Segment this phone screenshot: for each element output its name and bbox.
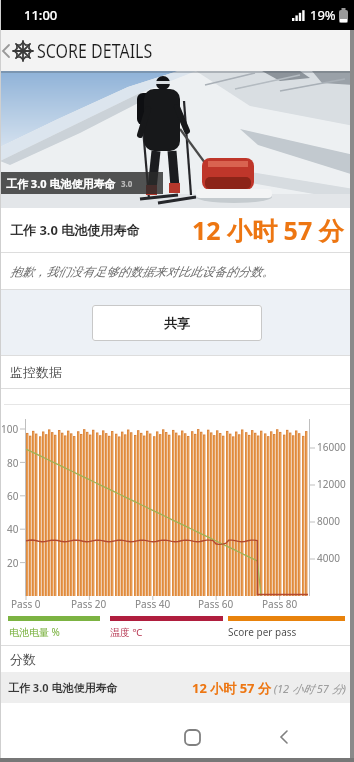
button[interactable]: 共享 xyxy=(92,305,262,341)
staticText: 分数 xyxy=(10,651,36,667)
staticText: 电池电量 % xyxy=(9,625,60,639)
staticText: 抱歉，我们没有足够的数据来对比此设备的分数。 xyxy=(10,264,274,279)
staticText: 100 xyxy=(1,422,19,436)
staticText: 11:00 xyxy=(24,6,58,24)
staticText: 60 xyxy=(7,489,19,503)
staticText: Pass 80 xyxy=(262,597,298,611)
button[interactable]: 工作 3.0 电池使用寿命 xyxy=(8,672,346,703)
staticText: 12 小时 57 分 xyxy=(192,213,344,247)
staticText: SCORE DETAILS xyxy=(37,38,153,64)
staticText: 工作 3.0 电池使用寿命 xyxy=(10,221,140,239)
button[interactable]: SCORE DETAILS xyxy=(0,30,354,71)
staticText: Pass 40 xyxy=(135,597,171,611)
staticText: 12000 xyxy=(317,477,346,491)
staticText: Pass 20 xyxy=(71,597,107,611)
staticText: 20 xyxy=(7,556,19,570)
staticText: 40 xyxy=(7,522,19,536)
button[interactable] xyxy=(267,720,301,754)
staticText: 共享 xyxy=(164,315,190,331)
staticText: 3.0 xyxy=(121,178,133,189)
staticText: 监控数据 xyxy=(10,364,62,380)
staticText: 温度 ℃ xyxy=(110,625,143,639)
staticText: Score per pass xyxy=(228,625,297,639)
staticText: 工作 3.0 电池使用寿命 xyxy=(6,176,116,191)
staticText: 16000 xyxy=(317,440,346,454)
button[interactable]: 工作 3.0 电池使用寿命 xyxy=(0,172,163,194)
staticText: Pass 0 xyxy=(11,597,41,611)
staticText: 8000 xyxy=(317,514,340,528)
staticText: 19% xyxy=(310,6,336,24)
staticText: Pass 60 xyxy=(198,597,234,611)
staticText: 工作 3.0 电池使用寿命 xyxy=(8,680,118,695)
button[interactable] xyxy=(175,720,209,754)
staticText: 80 xyxy=(7,456,19,470)
staticText: 4000 xyxy=(317,551,340,565)
staticText: 12 小时 57 分 (12 小时 57 分) xyxy=(192,679,346,697)
